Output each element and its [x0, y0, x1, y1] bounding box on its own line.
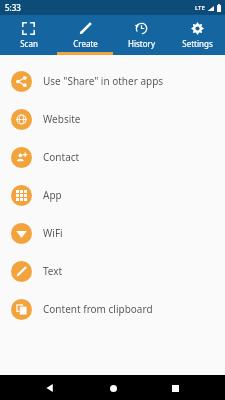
button[interactable]: Content from clipboard — [0, 290, 225, 328]
button[interactable]: Use "Share" in other apps — [0, 62, 225, 100]
button[interactable]: Text — [0, 252, 225, 290]
button[interactable]: Settings — [169, 15, 225, 55]
button[interactable]: Contact — [0, 138, 225, 176]
button[interactable]: Recent apps — [163, 376, 187, 400]
staticText: Text — [43, 264, 63, 278]
button[interactable]: Back — [38, 376, 62, 400]
button[interactable]: WiFi — [0, 214, 225, 252]
staticText: Content from clipboard — [43, 302, 153, 316]
staticText: Settings — [182, 38, 213, 49]
staticText: Use "Share" in other apps — [43, 74, 164, 88]
staticText: Scan — [20, 38, 38, 49]
button[interactable]: Create — [57, 15, 113, 55]
staticText: History — [128, 38, 155, 49]
staticText: 5:33 — [5, 2, 21, 13]
button[interactable]: Website — [0, 100, 225, 138]
staticText: App — [43, 188, 62, 202]
staticText: Website — [43, 112, 81, 126]
button[interactable]: App — [0, 176, 225, 214]
button[interactable]: Scan — [0, 15, 57, 55]
staticText: LTE — [195, 4, 205, 12]
button[interactable]: Home — [101, 376, 125, 400]
staticText: Contact — [43, 150, 80, 164]
staticText: WiFi — [43, 226, 63, 240]
button[interactable]: History — [113, 15, 169, 55]
staticText: Create — [73, 38, 98, 49]
